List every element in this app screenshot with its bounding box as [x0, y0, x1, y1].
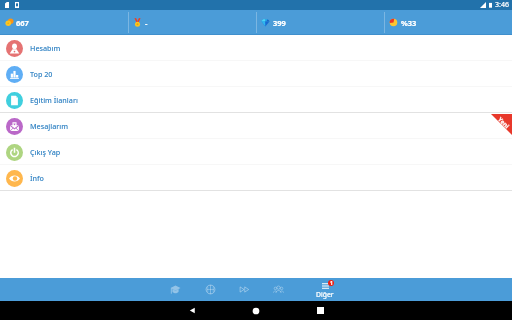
- staticText: 1: [330, 280, 333, 286]
- staticText: Hesabım: [30, 43, 61, 53]
- staticText: Yeni: [496, 116, 511, 130]
- staticText: Top 20: [30, 69, 53, 79]
- button[interactable]: İnfo: [0, 165, 512, 191]
- staticText: %33: [401, 18, 417, 28]
- staticText: -: [145, 18, 148, 28]
- button[interactable]: Bilgi Yarışması: [193, 278, 227, 301]
- button[interactable]: %33: [385, 10, 512, 35]
- button[interactable]: Arkadaşlar: [261, 278, 295, 301]
- button[interactable]: Mesajlarım: [0, 113, 512, 139]
- staticText: Eğitim İlanları: [30, 95, 78, 105]
- staticText: İnfo: [30, 173, 45, 183]
- button[interactable]: 1: [304, 278, 346, 301]
- button[interactable]: Home: [224, 307, 288, 315]
- button[interactable]: Çıkış Yap: [0, 139, 512, 165]
- staticText: 399: [273, 18, 286, 28]
- button[interactable]: Back: [160, 306, 224, 315]
- button[interactable]: -: [129, 10, 256, 35]
- staticText: Diğer: [316, 290, 334, 299]
- staticText: 3:46: [495, 0, 509, 10]
- button[interactable]: Hesabım: [0, 35, 512, 61]
- button[interactable]: Eğitim İlanları: [0, 87, 512, 113]
- staticText: 667: [16, 18, 29, 28]
- button[interactable]: Top 20: [0, 61, 512, 87]
- button[interactable]: Hızlı Oyun: [227, 278, 261, 301]
- staticText: Mesajlarım: [30, 121, 69, 131]
- staticText: Çıkış Yap: [30, 147, 61, 157]
- button[interactable]: Eğitim: [158, 278, 192, 301]
- button[interactable]: 667: [0, 10, 128, 35]
- button[interactable]: 399: [257, 10, 384, 35]
- button[interactable]: Recents: [288, 307, 352, 314]
